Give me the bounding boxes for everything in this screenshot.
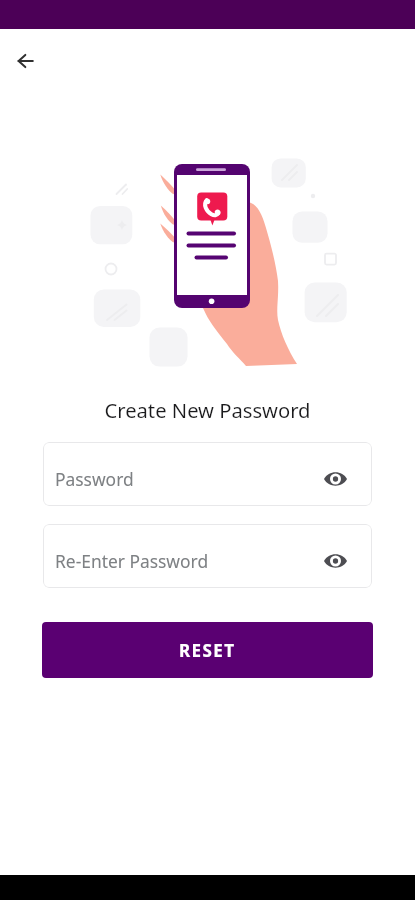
button[interactable]: Password: [43, 442, 372, 506]
button[interactable]: Re-Enter Password: [43, 524, 372, 588]
button[interactable]: Show password: [322, 548, 348, 574]
staticText: Re-Enter Password: [55, 549, 209, 573]
staticText: Create New Password: [0, 396, 415, 424]
staticText: Password: [55, 467, 134, 491]
button[interactable]: RESET: [42, 622, 373, 678]
button[interactable]: Show password: [322, 466, 348, 492]
staticText: RESET: [179, 639, 236, 662]
button[interactable]: Back: [6, 42, 44, 80]
